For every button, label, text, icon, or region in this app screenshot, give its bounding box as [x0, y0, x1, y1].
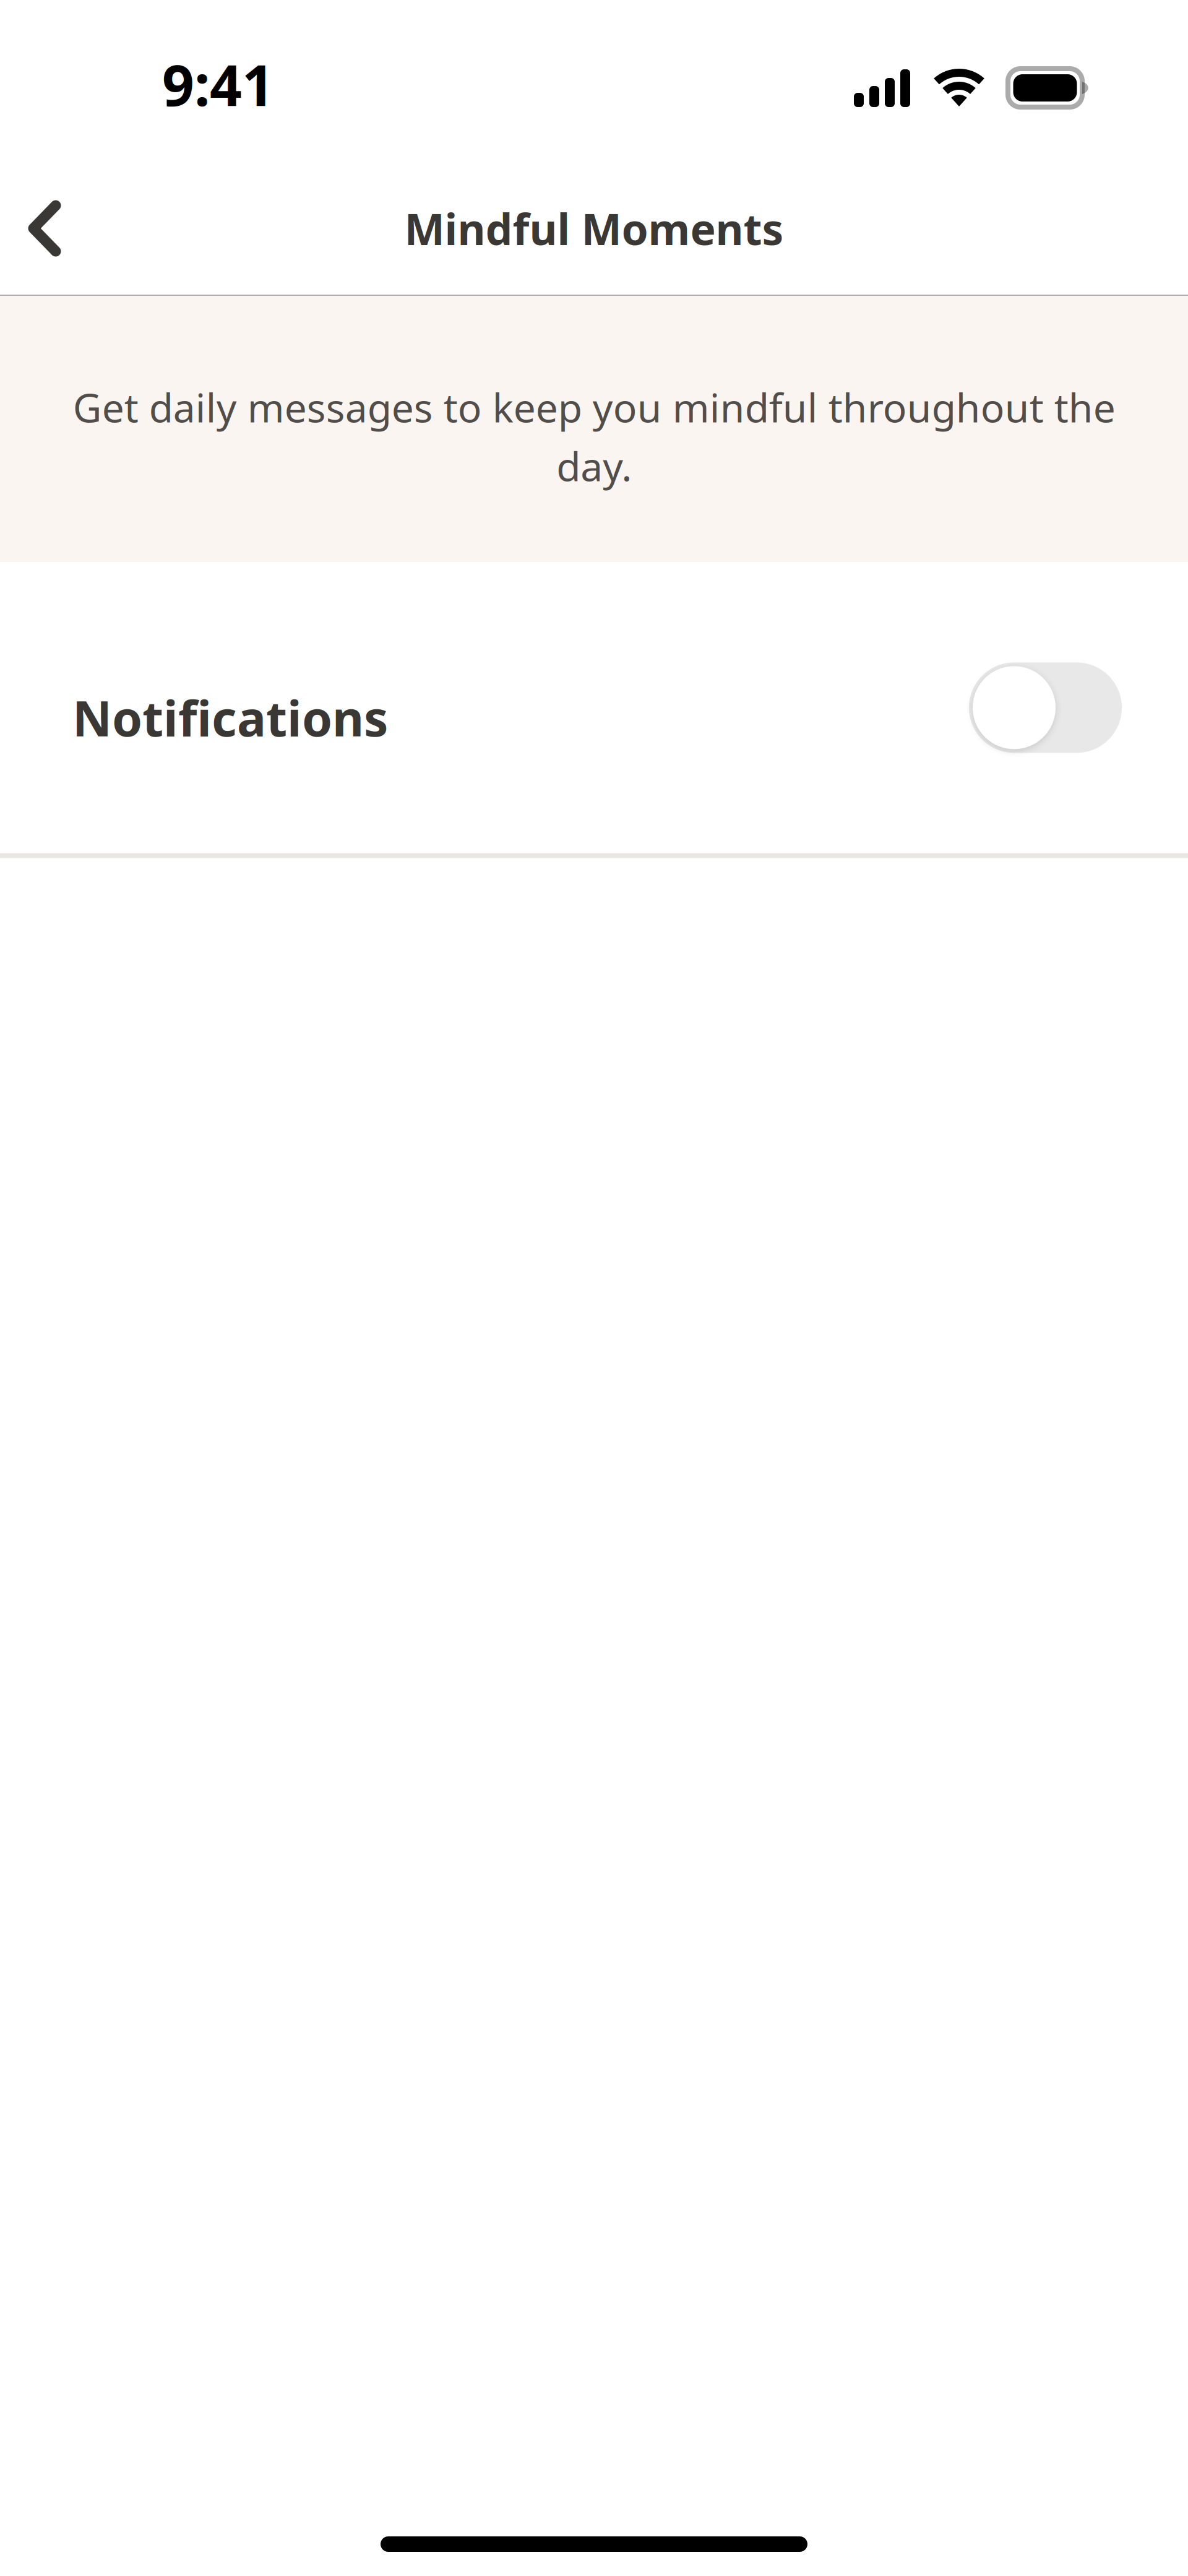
button[interactable]: Notifications	[0, 562, 1188, 853]
staticText: Mindful Moments	[404, 199, 784, 258]
staticText: 9:41	[162, 46, 274, 122]
staticText: Get daily messages to keep you mindful t…	[73, 380, 1115, 493]
button[interactable]: Back	[0, 179, 105, 278]
staticText: Notifications	[72, 684, 388, 751]
